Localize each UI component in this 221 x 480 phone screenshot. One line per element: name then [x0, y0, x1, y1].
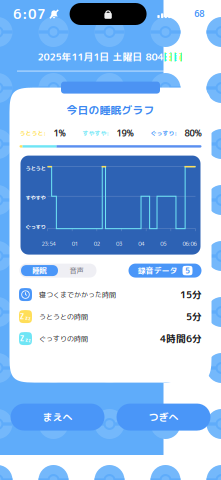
staticText: 68 [194, 8, 204, 20]
staticText: 5分 [186, 310, 202, 323]
button[interactable]: Z [19, 328, 202, 350]
staticText: 03 [116, 240, 122, 247]
staticText: ぐっすり [25, 223, 45, 231]
staticText: 06:06 [182, 240, 196, 247]
staticText: z [28, 337, 31, 344]
staticText: 04 [138, 240, 144, 247]
staticText: うとうとの時間 [39, 312, 88, 321]
staticText: 5 [185, 265, 190, 276]
button[interactable]: 睡眠 [21, 265, 58, 276]
staticText: つぎへ [148, 410, 178, 424]
staticText: 4時間6分 [160, 332, 202, 345]
staticText: ぐっすり: [150, 129, 176, 137]
staticText: 今日の睡眠グラフ [66, 103, 154, 117]
staticText: 6:07 [13, 5, 46, 23]
staticText: 音声 [69, 265, 83, 276]
staticText: うとうと: [19, 129, 45, 137]
staticText: ぐっすりの時間 [39, 334, 88, 343]
button[interactable]: 寝つくまでかかった時間 [19, 284, 202, 306]
staticText: 05 [160, 240, 166, 247]
staticText: 15分 [180, 288, 202, 301]
staticText: まえへ [42, 410, 72, 424]
staticText: z [25, 314, 28, 322]
staticText: 02 [94, 240, 100, 247]
staticText: Z [20, 334, 25, 344]
staticText: 23:54 [41, 240, 55, 247]
button[interactable]: 録音データ [128, 264, 201, 278]
button[interactable]: まえへ [10, 404, 104, 431]
staticText: Z [20, 312, 25, 322]
staticText: z [25, 336, 28, 344]
staticText: すやすや: [82, 129, 108, 137]
staticText: 80% [184, 127, 201, 139]
button[interactable]: Z [19, 306, 202, 328]
button[interactable]: つぎへ [116, 404, 210, 431]
staticText: 01 [72, 240, 78, 247]
staticText: 1% [53, 127, 65, 139]
staticText: z [28, 315, 31, 322]
staticText: 19% [116, 127, 133, 139]
staticText: 睡眠 [32, 265, 46, 276]
staticText: 録音データ [137, 265, 177, 276]
staticText: すやすや [25, 194, 45, 201]
staticText: 寝つくまでかかった時間 [39, 290, 116, 299]
staticText: 2025年11月1日 土曜日 804日目 [37, 50, 183, 64]
button[interactable]: 音声 [58, 265, 95, 276]
staticText: うとうと [25, 165, 45, 172]
